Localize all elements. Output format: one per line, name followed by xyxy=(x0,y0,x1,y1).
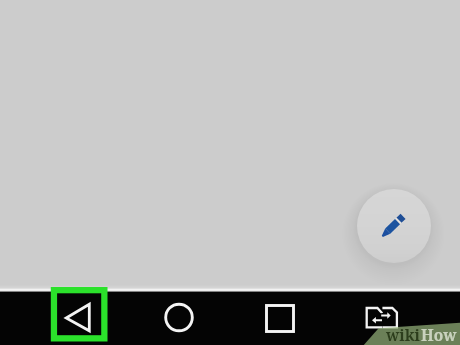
button[interactable]: Switch apps xyxy=(363,303,403,335)
button[interactable]: Home xyxy=(155,294,203,342)
staticText: How xyxy=(421,324,457,345)
button[interactable]: Compose xyxy=(357,189,431,263)
button[interactable]: Back xyxy=(47,285,111,345)
button[interactable]: Recent apps xyxy=(256,294,304,342)
staticText: wiki xyxy=(386,324,421,345)
